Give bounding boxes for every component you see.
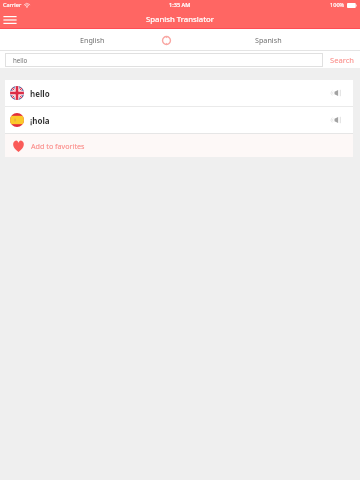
- button[interactable]: Search: [326, 51, 358, 68]
- staticText: Spanish: [255, 35, 282, 45]
- staticText: ¡hola: [30, 115, 50, 126]
- button[interactable]: ¡hola: [5, 107, 353, 133]
- button[interactable]: Menu: [1, 11, 19, 29]
- button[interactable]: Spanish: [238, 29, 298, 51]
- button[interactable]: Swap languages: [157, 29, 175, 51]
- staticText: hello: [13, 56, 28, 64]
- staticText: 1:35 AM: [169, 1, 191, 9]
- button[interactable]: Speak: [316, 80, 353, 106]
- button[interactable]: Add to favorites: [5, 134, 353, 157]
- staticText: 100%: [330, 1, 345, 9]
- staticText: Carrier: [3, 1, 22, 9]
- staticText: Search: [330, 55, 355, 65]
- staticText: hello: [30, 88, 50, 99]
- staticText: English: [80, 35, 105, 45]
- staticText: Spanish Translator: [146, 14, 214, 25]
- button[interactable]: hello: [5, 80, 353, 106]
- button[interactable]: Speak: [316, 107, 353, 133]
- button[interactable]: hello: [5, 53, 323, 67]
- button[interactable]: English: [62, 29, 122, 51]
- staticText: Add to favorites: [31, 141, 85, 151]
